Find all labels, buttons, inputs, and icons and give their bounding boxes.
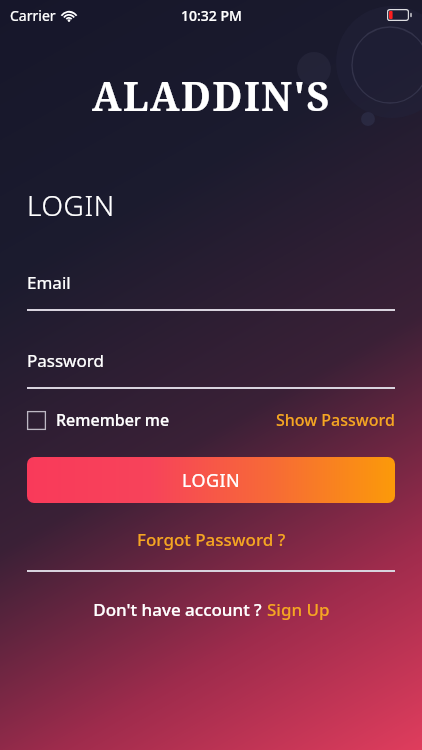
- staticText: LOGIN: [182, 468, 241, 493]
- staticText: Don't have account ?: [93, 598, 262, 621]
- staticText: ALADDIN'S: [92, 69, 331, 122]
- button[interactable]: Sign Up: [267, 598, 330, 621]
- button[interactable]: LOGIN: [27, 457, 395, 503]
- staticText: LOGIN: [27, 186, 115, 224]
- staticText: Forgot Password ?: [137, 528, 286, 551]
- staticText: 10:32 PM: [181, 6, 242, 25]
- staticText: Sign Up: [267, 598, 330, 621]
- button[interactable]: Forgot Password ?: [129, 523, 294, 556]
- other: Battery low: [387, 9, 412, 21]
- button[interactable]: Email: [27, 271, 395, 311]
- staticText: Show Password: [276, 409, 395, 431]
- staticText: Remember me: [56, 409, 170, 431]
- button[interactable]: Show Password: [276, 405, 395, 435]
- button[interactable]: Password: [27, 349, 395, 389]
- staticText: Email: [27, 271, 71, 294]
- staticText: Carrier: [10, 6, 56, 25]
- button[interactable]: Remember me: [27, 405, 170, 435]
- staticText: Password: [27, 349, 104, 372]
- other: Wi-Fi signal: [61, 10, 77, 22]
